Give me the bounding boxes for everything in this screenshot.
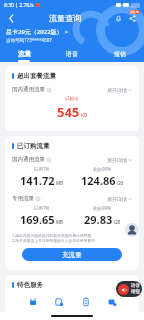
- staticText: 29.83: [84, 212, 113, 227]
- staticText: 当前号码173****4507: [6, 37, 52, 43]
- staticText: 流量查询: [49, 13, 81, 23]
- button[interactable]: Service 1: [26, 295, 39, 308]
- button[interactable]: Service 3: [79, 295, 92, 308]
- staticText: 充流量: [62, 251, 82, 259]
- staticText: 专用流量: [12, 195, 34, 202]
- staticText: 2.跨月流量但上月已使用量会计入当月已使用量中。: [12, 238, 99, 243]
- staticText: 展开详情: [107, 196, 127, 202]
- staticText: 141.72: [20, 173, 55, 188]
- staticText: 8:30 | 2.7K/s: [4, 2, 34, 9]
- staticText: 已用7%: [34, 166, 50, 172]
- staticText: 国内通用流量: [12, 156, 45, 163]
- staticText: 特色服务: [17, 281, 43, 289]
- staticText: 545: [57, 103, 80, 121]
- button[interactable]: 展开详情: [107, 157, 132, 163]
- button[interactable]: Notifications: [112, 12, 125, 25]
- staticText: 语音: [131, 283, 140, 289]
- button[interactable]: Customer service: [124, 222, 140, 238]
- staticText: GB: [114, 219, 121, 225]
- staticText: 短信: [114, 50, 126, 58]
- button[interactable]: 语音: [118, 283, 140, 295]
- staticText: 剩余99%: [93, 205, 111, 211]
- button[interactable]: 语音: [48, 49, 96, 62]
- button[interactable]: Share: [125, 11, 140, 25]
- staticText: 国内通用流量: [12, 86, 45, 93]
- button[interactable]: 流量: [0, 49, 48, 62]
- button[interactable]: 星卡29元（2022版）: [6, 28, 68, 36]
- staticText: 播报: [131, 289, 140, 295]
- staticText: 展开详情: [107, 87, 127, 93]
- staticText: 169.65: [20, 212, 55, 227]
- staticText: 领红包: [130, 10, 139, 14]
- staticText: GB: [117, 180, 124, 186]
- staticText: MB: [56, 219, 64, 225]
- staticText: 展开详情: [107, 157, 127, 163]
- staticText: 超出套餐流量: [17, 72, 56, 80]
- staticText: 流量: [18, 50, 31, 58]
- staticText: 已用7%: [34, 205, 50, 211]
- staticText: 星卡29元（2022版）: [6, 28, 63, 36]
- button[interactable]: 短信: [96, 49, 144, 62]
- button[interactable]: Service 2: [52, 295, 65, 308]
- staticText: MB: [56, 180, 64, 186]
- button[interactable]: 充流量: [22, 248, 122, 261]
- button[interactable]: Service 4: [105, 295, 118, 308]
- staticText: 剩余99%: [93, 166, 111, 172]
- staticText: >: [65, 29, 68, 36]
- staticText: 1.超出流量为粗放及过期套外流量的累计使用量。: [12, 233, 95, 238]
- staticText: 语音: [66, 50, 78, 58]
- staticText: 124.86: [81, 173, 116, 188]
- button[interactable]: 展开详情: [107, 87, 132, 93]
- button[interactable]: 展开详情: [107, 196, 132, 202]
- staticText: 已订购流量: [17, 142, 50, 150]
- staticText: KB: [81, 112, 88, 119]
- button[interactable]: Back: [4, 11, 18, 25]
- staticText: 已超出: [65, 96, 79, 102]
